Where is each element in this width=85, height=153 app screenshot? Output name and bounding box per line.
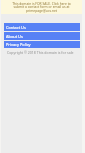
staticText: About Us bbox=[6, 34, 80, 39]
button[interactable]: About Us bbox=[4, 32, 80, 40]
staticText: This domain is FOR SALE. Click here to s… bbox=[12, 1, 71, 13]
staticText: Privacy Policy bbox=[6, 42, 80, 47]
button[interactable]: Contact Us bbox=[4, 23, 80, 31]
button[interactable]: This domain is FOR SALE. Click here to s… bbox=[1, 0, 82, 14]
button[interactable]: Privacy Policy bbox=[4, 41, 80, 48]
staticText: Copyright © 2018 This domain is for sale bbox=[7, 50, 74, 55]
staticText: Contact Us bbox=[6, 25, 80, 30]
